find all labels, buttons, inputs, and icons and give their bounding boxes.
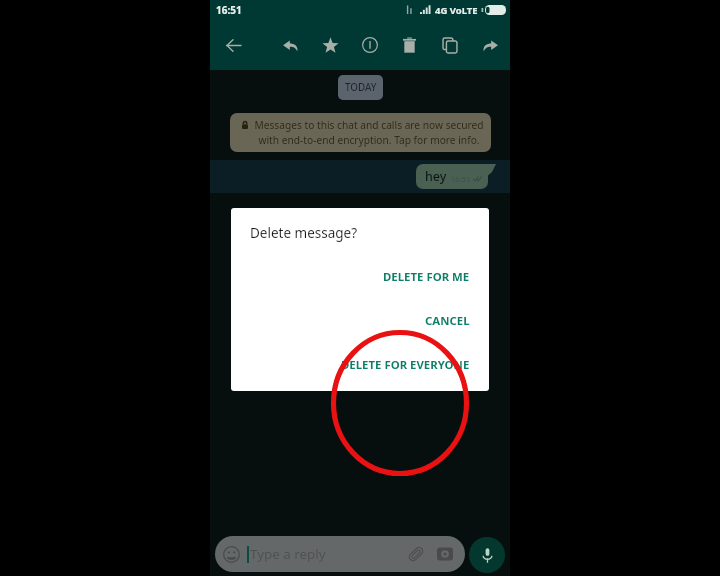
button[interactable]: Messages to this chat and calls are now … [230, 113, 491, 152]
staticText: Delete message? [250, 224, 358, 242]
button[interactable]: Camera [435, 544, 455, 564]
staticText: 16:51 [216, 3, 242, 17]
button[interactable]: hey [210, 160, 510, 193]
staticText: hey [425, 168, 447, 185]
button[interactable]: CANCEL [231, 309, 489, 333]
button[interactable]: Type a reply [215, 536, 465, 572]
button[interactable]: TODAY [338, 75, 383, 100]
staticText: DELETE FOR EVERYONE [341, 357, 470, 373]
button[interactable]: Reply [275, 30, 305, 60]
staticText: 4G VoLTE [435, 4, 478, 17]
button[interactable]: Copy [435, 30, 465, 60]
staticText: 16:51 [451, 174, 471, 184]
button[interactable]: Record voice message [469, 537, 505, 573]
button[interactable]: DELETE FOR ME [231, 265, 489, 289]
button[interactable]: Star [315, 30, 345, 60]
staticText: Messages to this chat and calls are now … [254, 118, 484, 147]
button[interactable]: Forward [475, 30, 505, 60]
staticText: CANCEL [425, 313, 470, 329]
button[interactable]: Message info [355, 30, 385, 60]
button[interactable]: Attach [405, 543, 427, 565]
staticText: DELETE FOR ME [383, 269, 470, 285]
button[interactable]: DELETE FOR EVERYONE [231, 353, 489, 377]
staticText: Type a reply [250, 545, 326, 563]
button[interactable]: Back [218, 30, 248, 60]
button[interactable]: Delete [394, 30, 424, 60]
staticText: TODAY [345, 81, 377, 94]
